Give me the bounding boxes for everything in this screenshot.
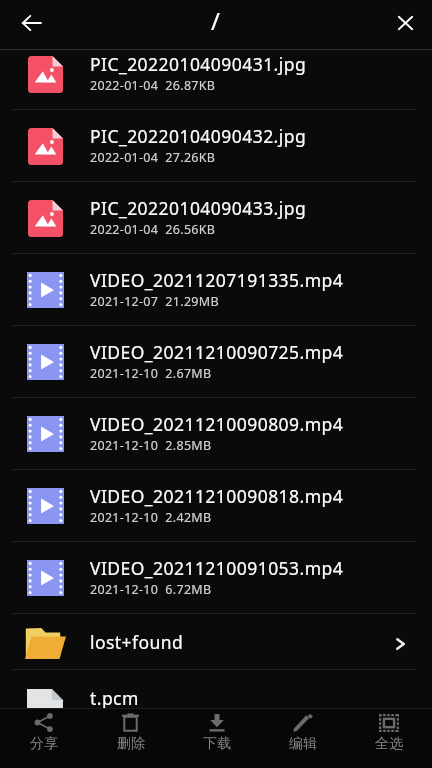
button[interactable]: 编辑 <box>260 709 346 768</box>
staticText: 全选 <box>375 735 403 753</box>
staticText: VIDEO_20211210090809.mp4 <box>90 412 344 436</box>
staticText: 编辑 <box>289 735 317 753</box>
button[interactable]: VIDEO_20211210090809.mp4 <box>0 398 432 469</box>
button[interactable]: lost+found <box>0 614 432 669</box>
staticText: 2022-01-04 27.26KB <box>90 149 216 166</box>
button[interactable]: VIDEO_20211210090725.mp4 <box>0 326 432 397</box>
staticText: VIDEO_20211210091053.mp4 <box>90 556 344 580</box>
button[interactable]: VIDEO_20211207191335.mp4 <box>0 254 432 325</box>
staticText: 2021-12-10 6.72MB <box>90 581 212 598</box>
staticText: 删除 <box>117 735 145 753</box>
staticText: 下载 <box>203 735 231 753</box>
staticText: VIDEO_20211210090818.mp4 <box>90 484 344 508</box>
staticText: PIC_20220104090431.jpg <box>90 52 307 76</box>
button[interactable]: 删除 <box>87 709 174 768</box>
button[interactable]: Close <box>385 3 425 43</box>
button[interactable]: 分享 <box>0 709 87 768</box>
staticText: VIDEO_20211210090725.mp4 <box>90 340 344 364</box>
staticText: 分享 <box>30 735 58 753</box>
button[interactable]: PIC_20220104090433.jpg <box>0 182 432 253</box>
button[interactable]: 全选 <box>346 709 432 768</box>
staticText: 2021-12-10 2.42MB <box>90 509 212 526</box>
staticText: 2021-12-07 21.29MB <box>90 293 219 310</box>
staticText: PIC_20220104090433.jpg <box>90 196 307 220</box>
button[interactable]: PIC_20220104090431.jpg <box>0 38 432 109</box>
button[interactable]: t.pcm <box>0 670 432 725</box>
button[interactable]: PIC_20220104090432.jpg <box>0 110 432 181</box>
staticText: / <box>211 4 220 37</box>
staticText: 2021-12-10 2.67MB <box>90 365 212 382</box>
staticText: 2022-01-04 26.56KB <box>90 221 216 238</box>
staticText: VIDEO_20211207191335.mp4 <box>90 268 344 292</box>
staticText: PIC_20220104090432.jpg <box>90 124 307 148</box>
staticText: t.pcm <box>90 686 139 710</box>
staticText: 2022-01-04 26.87KB <box>90 77 216 94</box>
staticText: 2021-12-10 2.85MB <box>90 437 212 454</box>
staticText: lost+found <box>90 630 184 654</box>
button[interactable]: VIDEO_20211210091053.mp4 <box>0 542 432 613</box>
button[interactable]: VIDEO_20211210090818.mp4 <box>0 470 432 541</box>
button[interactable]: Back <box>11 3 51 43</box>
button[interactable]: 下载 <box>174 709 260 768</box>
